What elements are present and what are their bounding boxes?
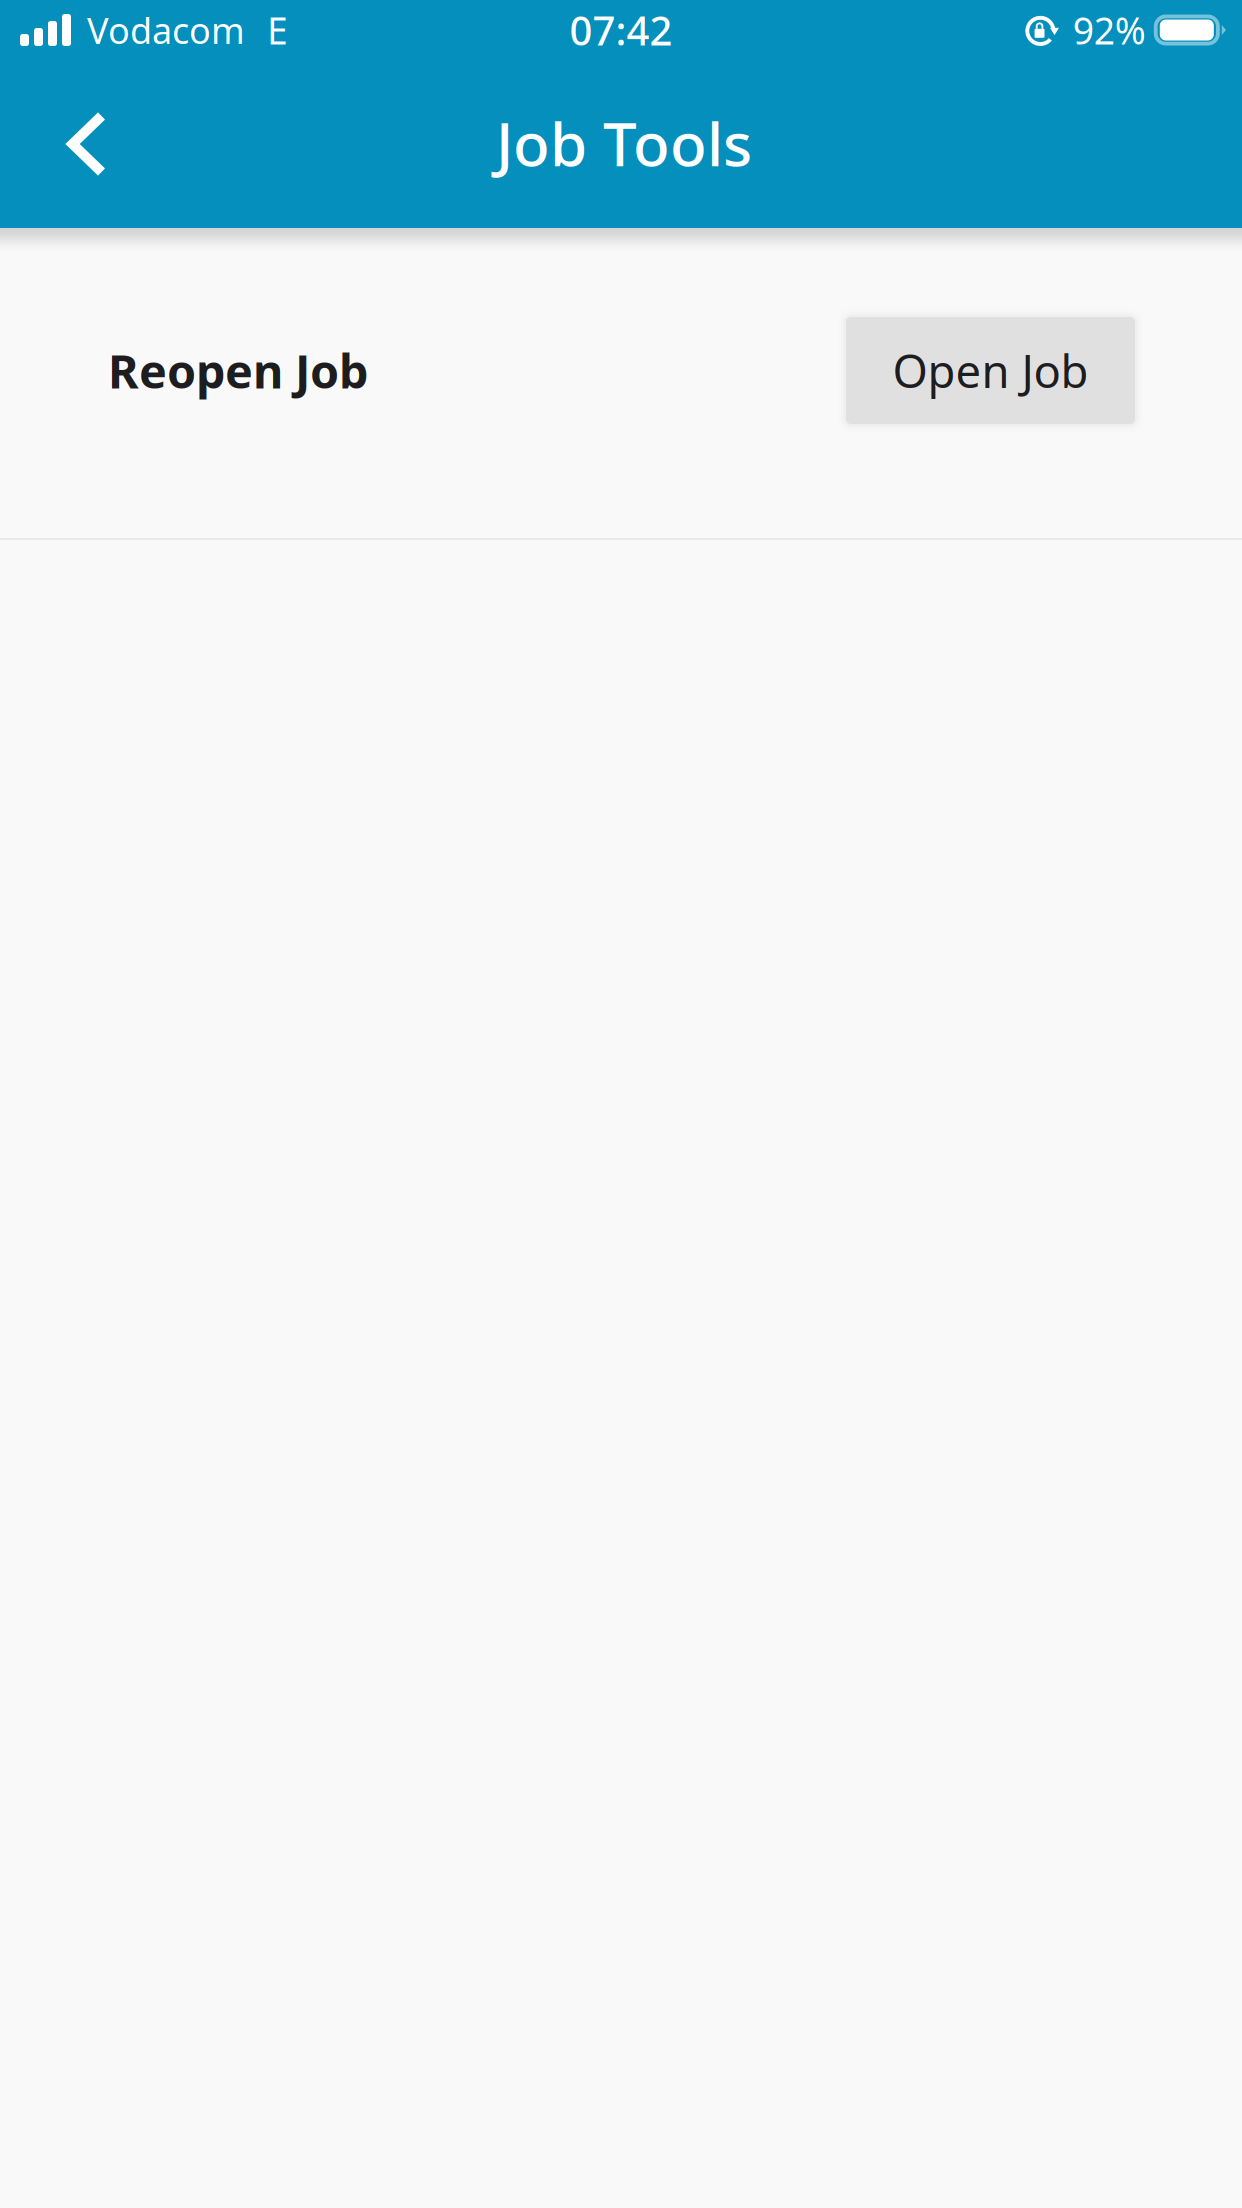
staticText: Job Tools bbox=[496, 103, 752, 183]
staticText: Vodacom bbox=[87, 6, 245, 54]
button[interactable]: Back bbox=[35, 88, 139, 200]
button[interactable]: Open Job bbox=[846, 317, 1135, 424]
staticText: Reopen Job bbox=[108, 339, 368, 401]
staticText: Open Job bbox=[892, 340, 1088, 401]
staticText: E bbox=[267, 5, 288, 55]
staticText: 92% bbox=[1073, 5, 1146, 55]
staticText: 07:42 bbox=[569, 3, 672, 56]
